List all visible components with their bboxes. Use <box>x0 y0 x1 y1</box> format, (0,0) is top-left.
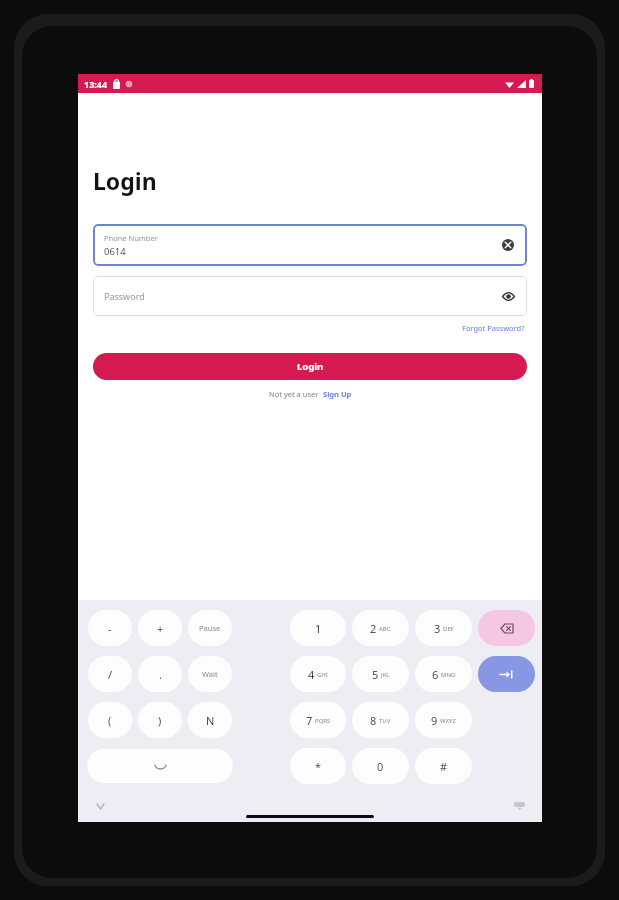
button[interactable]: 4 <box>290 656 346 692</box>
button[interactable]: . <box>138 656 182 692</box>
staticText: DEF <box>443 625 454 633</box>
staticText: ) <box>158 713 162 728</box>
staticText: WXYZ <box>440 717 456 725</box>
button[interactable]: 2 <box>352 610 409 646</box>
staticText: Pause <box>199 623 221 633</box>
button[interactable]: + <box>138 610 182 646</box>
button[interactable]: N <box>188 702 232 738</box>
button[interactable]: Clear phone number <box>498 235 518 255</box>
staticText: Sign Up <box>323 389 352 399</box>
staticText: # <box>440 759 448 774</box>
button[interactable]: Space <box>87 749 233 783</box>
button[interactable]: 0 <box>352 748 409 784</box>
staticText: 0614 <box>104 245 126 258</box>
button[interactable]: 1 <box>290 610 346 646</box>
button[interactable]: 8 <box>352 702 409 738</box>
staticText: 1 <box>315 621 322 636</box>
staticText: 7 <box>306 713 313 728</box>
staticText: Password <box>104 290 145 302</box>
button[interactable]: 5 <box>352 656 409 692</box>
staticText: ( <box>108 713 112 728</box>
button[interactable]: Backspace <box>478 610 535 646</box>
staticText: Login <box>297 360 324 373</box>
button[interactable]: Show password <box>498 286 518 306</box>
staticText: * <box>315 759 322 774</box>
button[interactable]: Login <box>93 353 527 380</box>
button[interactable]: Collapse <box>92 798 108 814</box>
staticText: ABC <box>379 625 391 633</box>
button[interactable]: 3 <box>415 610 472 646</box>
staticText: Not yet a user <box>269 389 319 399</box>
staticText: JKL <box>381 671 390 679</box>
button[interactable]: Password <box>93 276 527 316</box>
staticText: . <box>159 667 162 682</box>
button[interactable]: - <box>88 610 132 646</box>
button[interactable]: 7 <box>290 702 346 738</box>
button[interactable]: ( <box>88 702 132 738</box>
staticText: 9 <box>431 713 438 728</box>
button[interactable]: 9 <box>415 702 472 738</box>
button[interactable]: # <box>415 748 472 784</box>
staticText: Login <box>93 165 157 196</box>
staticText: Phone Number <box>104 233 158 243</box>
staticText: GHI <box>317 671 328 679</box>
staticText: 13:44 <box>84 78 108 90</box>
button[interactable]: Sign Up <box>323 389 352 399</box>
button[interactable]: Hide keyboard <box>510 797 528 815</box>
staticText: 2 <box>370 621 377 636</box>
button[interactable]: ) <box>138 702 182 738</box>
staticText: + <box>157 621 164 636</box>
staticText: 4 <box>308 667 315 682</box>
button[interactable]: Forgot Password? <box>460 321 527 335</box>
staticText: TUV <box>379 717 391 725</box>
staticText: PQRS <box>315 717 331 725</box>
staticText: - <box>108 621 112 636</box>
button[interactable]: Pause <box>188 610 232 646</box>
button[interactable]: Next field <box>478 656 535 692</box>
button[interactable]: * <box>290 748 346 784</box>
staticText: / <box>108 667 113 682</box>
staticText: 8 <box>370 713 377 728</box>
button[interactable]: Wait <box>188 656 232 692</box>
staticText: 0 <box>377 759 384 774</box>
staticText: 5 <box>372 667 379 682</box>
staticText: Forgot Password? <box>462 323 525 333</box>
staticText: MNO <box>441 671 456 679</box>
staticText: 6 <box>432 667 439 682</box>
button[interactable]: 6 <box>415 656 472 692</box>
staticText: 3 <box>434 621 441 636</box>
staticText: Wait <box>202 669 218 679</box>
button[interactable]: / <box>88 656 132 692</box>
staticText: N <box>206 713 215 728</box>
button[interactable]: Phone Number <box>93 224 527 266</box>
